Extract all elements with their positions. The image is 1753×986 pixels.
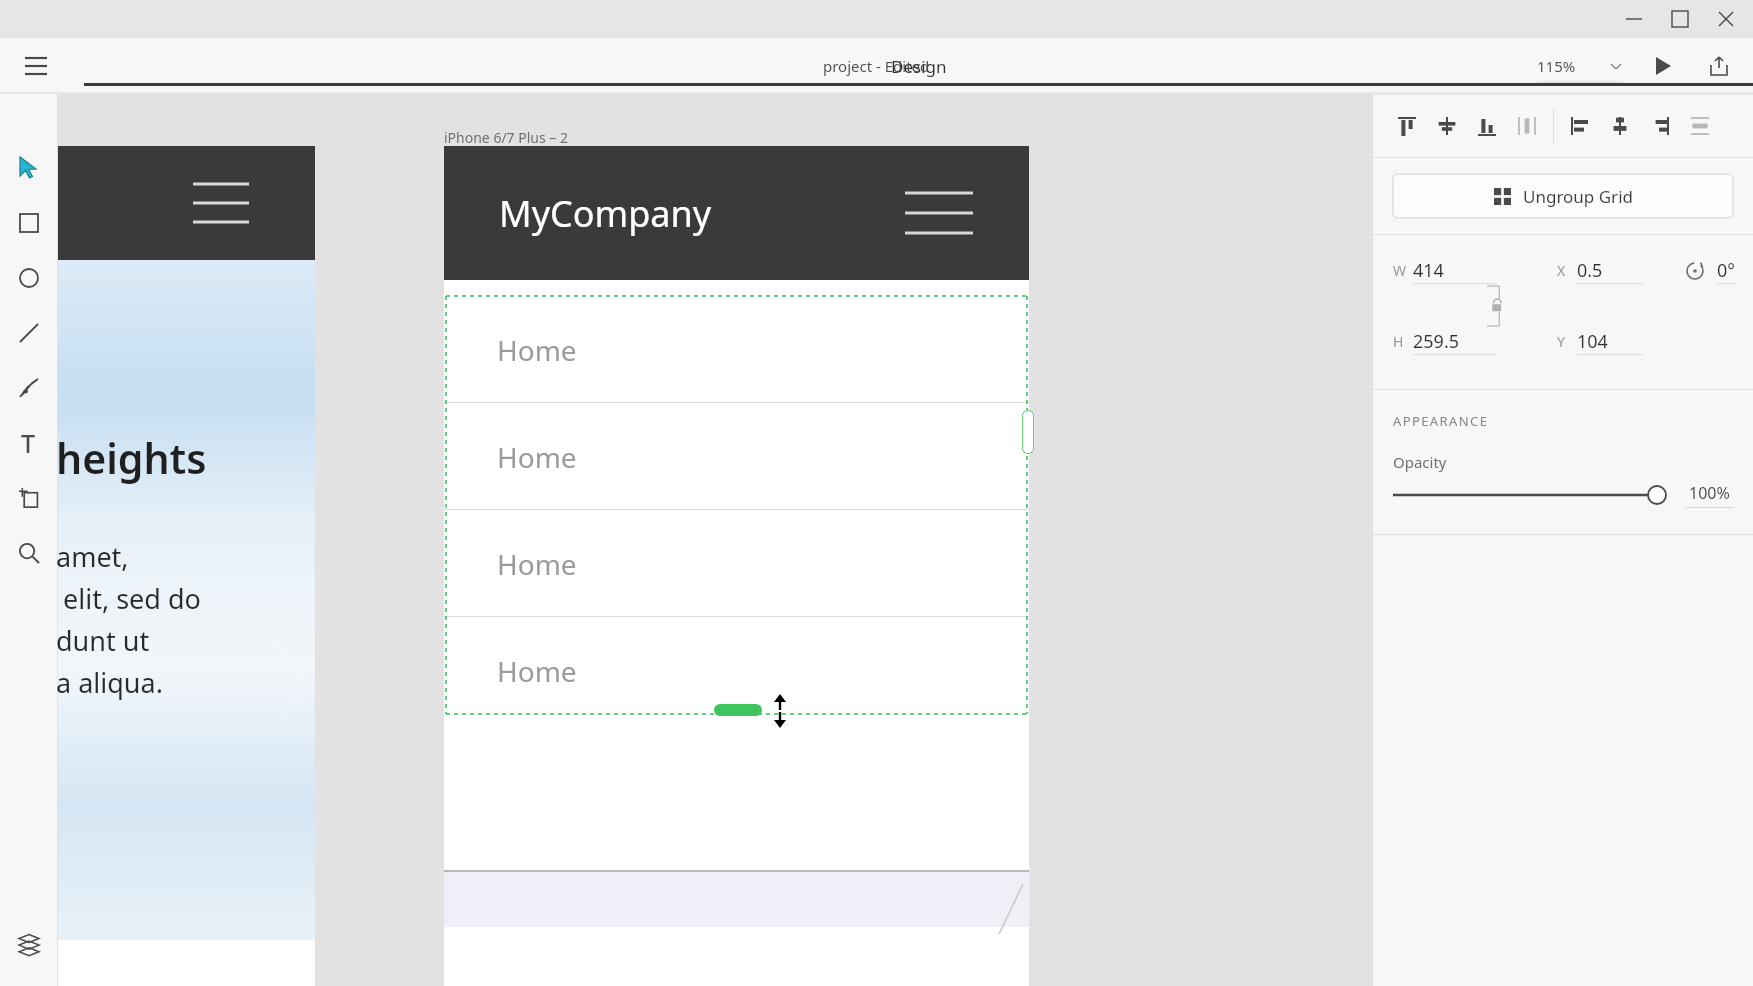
button[interactable]: Maximize bbox=[1657, 4, 1703, 34]
staticText: 104 bbox=[1577, 329, 1608, 354]
button[interactable]: Ungroup Grid bbox=[1393, 174, 1733, 218]
button[interactable]: Play preview bbox=[1643, 46, 1683, 86]
staticText: Home bbox=[497, 652, 577, 690]
button[interactable]: Distribute horizontal bbox=[1680, 106, 1720, 146]
staticText: Home bbox=[497, 438, 577, 476]
staticText: heights bbox=[56, 430, 207, 486]
button[interactable]: Align bottom bbox=[1467, 106, 1507, 146]
staticText: T bbox=[21, 426, 36, 460]
button[interactable]: Home bbox=[444, 403, 1029, 510]
button[interactable]: Home bbox=[444, 510, 1029, 617]
staticText: 100% bbox=[1689, 482, 1730, 504]
staticText: W bbox=[1393, 261, 1413, 280]
button[interactable]: Align center horizontal bbox=[1600, 106, 1640, 146]
staticText: 115% bbox=[1537, 56, 1576, 76]
button[interactable]: 259.5 bbox=[1413, 328, 1509, 354]
staticText: iPhone 6/7 Plus – 2 bbox=[444, 128, 568, 147]
button[interactable]: Layers bbox=[9, 924, 49, 964]
button[interactable]: Minimize bbox=[1611, 4, 1657, 34]
button[interactable]: Align left bbox=[1560, 106, 1600, 146]
button[interactable]: 115% bbox=[1537, 49, 1623, 83]
button[interactable]: Resize handle bottom bbox=[714, 704, 762, 716]
button[interactable]: Home bbox=[444, 296, 1029, 403]
staticText: Design bbox=[891, 55, 947, 78]
staticText: APPEARANCE bbox=[1393, 412, 1489, 430]
button[interactable]: Zoom bbox=[0, 525, 57, 580]
button[interactable]: Line bbox=[0, 305, 57, 360]
staticText: amet, elit, sed do dunt ut a aliqua. bbox=[56, 538, 201, 701]
button[interactable]: Select bbox=[0, 140, 57, 195]
staticText: X bbox=[1557, 261, 1577, 280]
staticText: 259.5 bbox=[1413, 329, 1460, 354]
staticText: Y bbox=[1557, 332, 1577, 351]
button[interactable]: Opacity slider bbox=[1393, 482, 1671, 508]
button[interactable]: Close bbox=[1703, 4, 1749, 34]
button[interactable]: 0° bbox=[1717, 257, 1737, 283]
staticText: Home bbox=[497, 545, 577, 583]
staticText: MyCompany bbox=[499, 189, 712, 238]
button[interactable]: Rectangle bbox=[0, 195, 57, 250]
button[interactable]: Text bbox=[0, 415, 57, 470]
button[interactable]: Ellipse bbox=[0, 250, 57, 305]
button[interactable]: Design bbox=[84, 38, 1753, 94]
button[interactable]: Resize handle right bbox=[1022, 410, 1034, 454]
staticText: 0.5 bbox=[1577, 258, 1603, 283]
staticText: 414 bbox=[1413, 258, 1444, 283]
button[interactable]: Align right bbox=[1640, 106, 1680, 146]
button[interactable]: Pen bbox=[0, 360, 57, 415]
button[interactable]: Menu bbox=[12, 42, 60, 90]
button[interactable]: Distribute vertical bbox=[1507, 106, 1547, 146]
button[interactable]: 104 bbox=[1577, 328, 1655, 354]
staticText: Ungroup Grid bbox=[1523, 185, 1633, 208]
button[interactable]: 414 bbox=[1413, 257, 1509, 283]
staticText: project - Edited bbox=[823, 56, 930, 76]
staticText: Opacity bbox=[1393, 452, 1447, 472]
button[interactable]: Home bbox=[444, 617, 1029, 724]
staticText: 0° bbox=[1717, 258, 1735, 283]
button[interactable]: Artboard bbox=[0, 470, 57, 525]
button[interactable]: Share bbox=[1699, 46, 1739, 86]
staticText: Home bbox=[497, 331, 577, 369]
staticText: H bbox=[1393, 332, 1413, 351]
button[interactable]: Align top bbox=[1387, 106, 1427, 146]
button[interactable]: 0.5 bbox=[1577, 257, 1655, 283]
button[interactable]: Align middle vertical bbox=[1427, 106, 1467, 146]
